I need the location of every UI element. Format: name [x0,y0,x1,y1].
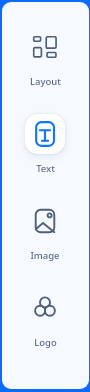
other: Layout [25,27,65,67]
staticText: Text [36,162,55,175]
button[interactable]: Image [2,197,89,259]
staticText: Image [30,249,60,262]
button[interactable]: Text [2,110,89,172]
button[interactable]: Logo [2,284,89,346]
staticText: Layout [30,75,61,88]
other: Image [25,201,65,241]
other: Text [25,114,65,154]
button[interactable]: Layout [2,23,89,85]
staticText: Logo [34,336,57,349]
other: Logo [25,288,65,328]
